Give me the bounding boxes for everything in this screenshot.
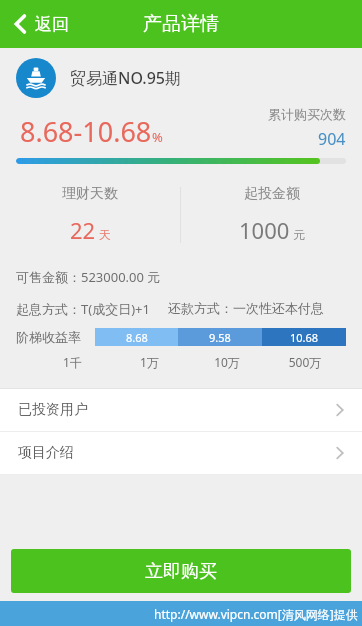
staticText: % xyxy=(152,128,163,146)
staticText: 8.68-10.68 xyxy=(20,113,152,150)
staticText: 10万 xyxy=(188,354,266,370)
staticText: 9.58 xyxy=(209,330,231,345)
staticText: 起息方式：T(成交日)+1 xyxy=(16,300,150,318)
staticText: 阶梯收益率 xyxy=(16,329,81,345)
staticText: 1千 xyxy=(34,354,111,370)
staticText: 返回 xyxy=(35,14,69,35)
staticText: 立即购买 xyxy=(145,560,217,583)
staticText: 元 xyxy=(293,227,305,242)
staticText: 10.68 xyxy=(290,330,319,345)
staticText: 500万 xyxy=(266,354,344,370)
staticText: 起投金额 xyxy=(244,185,300,203)
staticText: 天 xyxy=(99,227,111,242)
staticText: 8.68 xyxy=(126,330,148,345)
staticText: 累计购买次数 xyxy=(268,106,346,122)
staticText: 1000 xyxy=(239,215,290,245)
staticText: 1万 xyxy=(111,354,188,370)
staticText: 贸易通NO.95期 xyxy=(70,67,181,89)
staticText: 产品详情 xyxy=(143,12,219,36)
staticText: 项目介绍 xyxy=(18,444,74,462)
staticText: 904 xyxy=(318,128,346,150)
button[interactable]: 立即购买 xyxy=(11,549,351,593)
button[interactable]: 已投资用户 xyxy=(0,389,362,431)
staticText: 还款方式：一次性还本付息 xyxy=(168,300,324,316)
staticText: 22 xyxy=(70,215,96,245)
staticText: 可售金额：523000.00 元 xyxy=(16,268,161,286)
staticText: http://www.vipcn.com[清风网络]提供 xyxy=(154,606,358,622)
button[interactable]: 项目介绍 xyxy=(0,432,362,474)
staticText: 理财天数 xyxy=(62,185,118,203)
button[interactable]: 返回 xyxy=(0,0,81,48)
staticText: 已投资用户 xyxy=(18,401,88,419)
